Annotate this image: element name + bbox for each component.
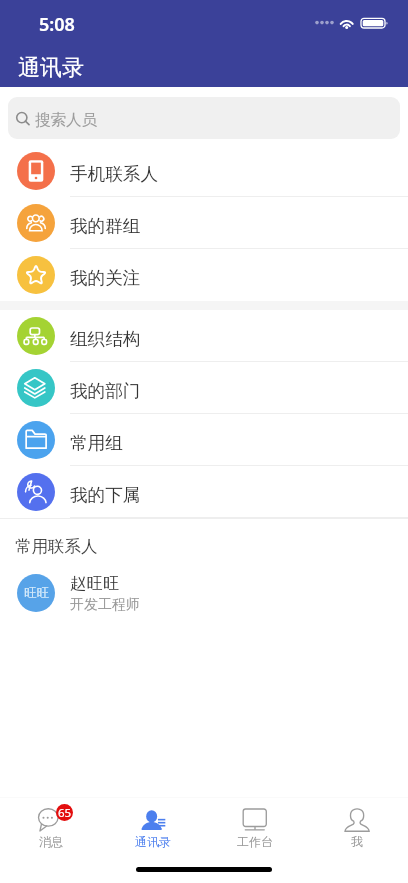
staticText: 我的部门 [70,380,141,402]
staticText: 开发工程师 [70,596,140,614]
staticText: 赵旺旺 [70,573,120,594]
staticText: 5:08 [39,12,75,37]
staticText: 组织结构 [70,328,141,350]
staticText: 搜索人员 [35,110,97,130]
staticText: 消息 [39,834,63,849]
button[interactable]: 旺旺 [0,565,408,621]
staticText: 常用联系人 [15,536,98,557]
staticText: 常用组 [70,432,123,454]
button[interactable]: 我的下属 [0,466,408,518]
staticText: 手机联系人 [70,163,158,185]
button[interactable]: 我 [306,798,408,849]
button[interactable]: 我的关注 [0,249,408,301]
staticText: 我的下属 [70,484,141,506]
staticText: 我 [351,834,363,849]
staticText: 65 [58,805,72,821]
button[interactable]: 手机联系人 [0,145,408,197]
staticText: 通讯录 [135,834,171,849]
button[interactable]: 组织结构 [0,310,408,362]
button[interactable]: 65 [0,798,102,849]
button[interactable]: 通讯录 [102,798,204,849]
button[interactable]: 我的部门 [0,362,408,414]
staticText: 工作台 [237,834,273,849]
staticText: 旺旺 [24,585,49,601]
button[interactable]: 搜索人员 [8,97,400,139]
button[interactable]: 工作台 [204,798,306,849]
staticText: 通讯录 [18,54,84,82]
button[interactable]: 常用组 [0,414,408,466]
staticText: 我的关注 [70,267,141,289]
staticText: 我的群组 [70,215,141,237]
button[interactable]: 我的群组 [0,197,408,249]
